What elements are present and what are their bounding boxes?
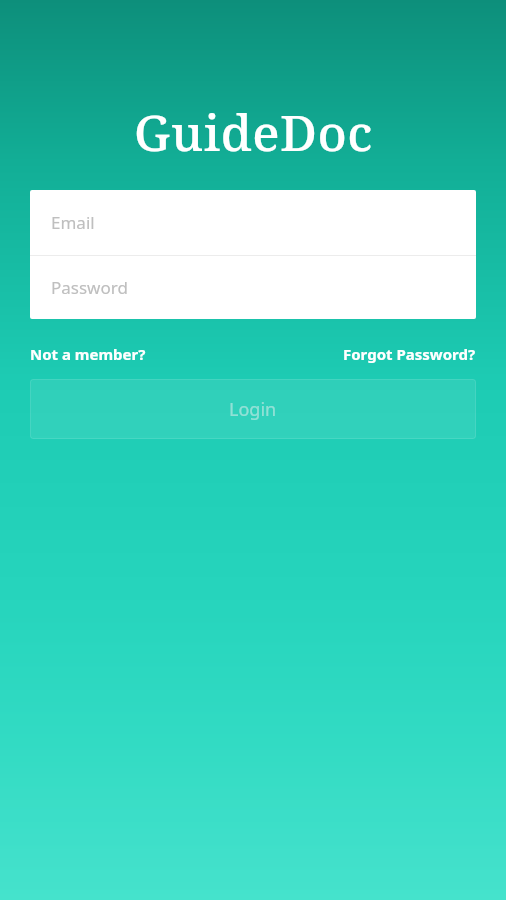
staticText: Not a member?	[30, 344, 146, 364]
button[interactable]: Password	[30, 256, 476, 319]
button[interactable]: Email	[30, 190, 476, 255]
button[interactable]: Not a member?	[30, 341, 146, 367]
staticText: Password	[51, 276, 128, 299]
staticText: Login	[229, 397, 277, 422]
staticText: Forgot Password?	[343, 344, 476, 364]
staticText: GuideDoc	[134, 98, 373, 166]
staticText: Email	[51, 211, 95, 234]
button[interactable]: Login	[30, 379, 476, 439]
button[interactable]: Forgot Password?	[343, 341, 476, 367]
